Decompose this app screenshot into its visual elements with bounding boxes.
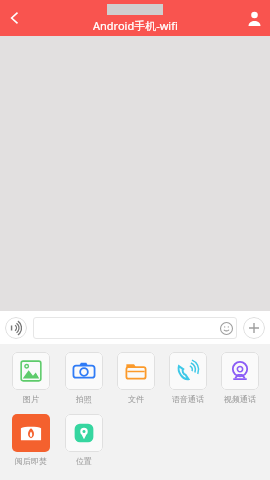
button[interactable]: Emoji bbox=[219, 321, 233, 335]
button[interactable]: 图片 bbox=[10, 352, 52, 404]
button[interactable]: 文件 bbox=[115, 352, 157, 404]
staticText: 拍照 bbox=[76, 394, 92, 404]
staticText: 图片 bbox=[23, 394, 39, 404]
button[interactable]: Voice input bbox=[5, 317, 27, 339]
button[interactable]: 位置 bbox=[63, 414, 105, 466]
staticText: Android手机-wifi bbox=[93, 18, 178, 33]
staticText: 语音通话 bbox=[172, 394, 204, 404]
button[interactable]: Emoji bbox=[33, 317, 237, 339]
staticText: 视频通话 bbox=[224, 394, 256, 404]
staticText: 阅后即焚 bbox=[15, 456, 47, 466]
button[interactable]: More bbox=[243, 317, 265, 339]
button[interactable]: Back bbox=[0, 3, 30, 33]
button[interactable]: 拍照 bbox=[63, 352, 105, 404]
button[interactable]: 视频通话 bbox=[219, 352, 261, 404]
button[interactable]: Profile bbox=[238, 2, 270, 34]
button[interactable]: 语音通话 bbox=[167, 352, 209, 404]
staticText: 位置 bbox=[76, 456, 92, 466]
button[interactable]: 阅后即焚 bbox=[10, 414, 52, 466]
staticText: 文件 bbox=[128, 394, 144, 404]
